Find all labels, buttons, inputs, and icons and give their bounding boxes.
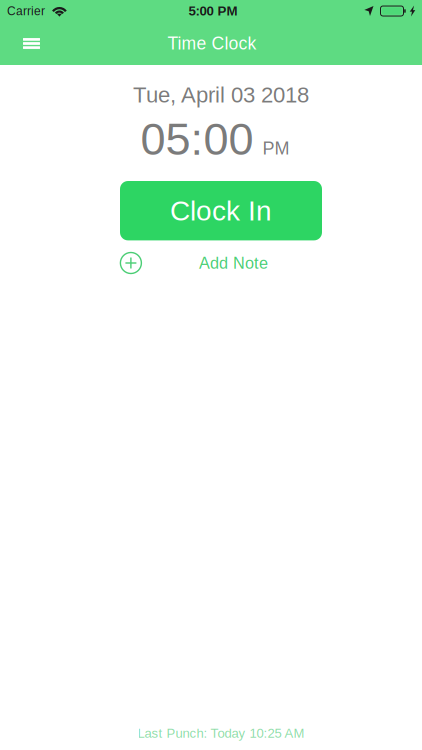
button[interactable]: Clock In [120,181,322,240]
staticText: Tue, April 03 2018 [133,82,309,107]
button[interactable]: Menu [0,24,60,63]
staticText: 5:00 PM [188,4,237,18]
staticText: Last Punch: Today 10:25 AM [137,726,304,741]
staticText: 05:00 [140,114,253,164]
staticText: Carrier [7,4,45,18]
staticText: Clock In [170,195,272,226]
staticText: Time Clock [167,34,256,53]
staticText: PM [262,138,289,158]
staticText: Add Note [199,254,268,272]
button[interactable]: Add Note [120,250,289,276]
